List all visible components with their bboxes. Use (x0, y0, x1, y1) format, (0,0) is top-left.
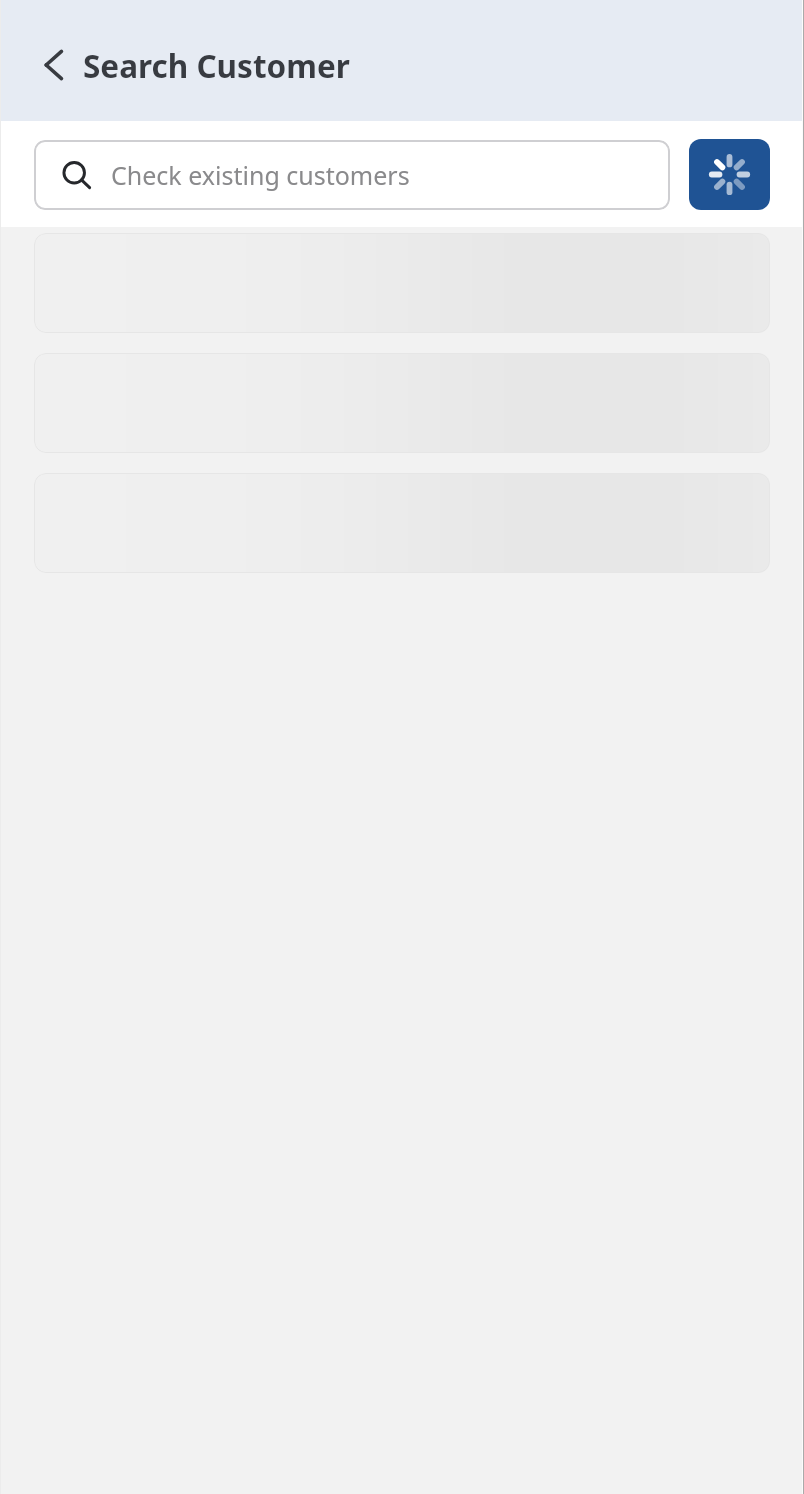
button[interactable]: Back (32, 43, 76, 87)
button[interactable]: Search (689, 139, 770, 210)
button[interactable]: Check existing customers (34, 140, 670, 210)
staticText: Check existing customers (111, 158, 410, 192)
staticText: Search Customer (83, 44, 350, 87)
